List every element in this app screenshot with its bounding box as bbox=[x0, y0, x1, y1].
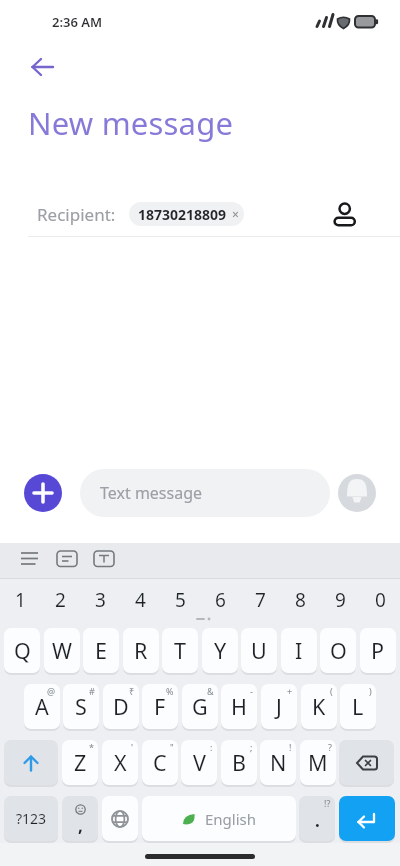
button[interactable]: H bbox=[221, 684, 257, 729]
staticText: M bbox=[308, 748, 328, 777]
staticText: × bbox=[232, 206, 239, 222]
staticText: U bbox=[251, 636, 267, 665]
button[interactable]: B bbox=[221, 740, 257, 785]
button[interactable]: F bbox=[142, 684, 178, 729]
button[interactable]: A bbox=[24, 684, 60, 729]
staticText: F bbox=[154, 692, 166, 721]
staticText: 3 bbox=[95, 587, 106, 613]
button[interactable]: 1 bbox=[0, 580, 40, 620]
button[interactable] bbox=[338, 474, 376, 512]
staticText: H bbox=[231, 692, 247, 721]
button[interactable]: 6 bbox=[200, 580, 240, 620]
staticText: 8 bbox=[295, 587, 306, 613]
button[interactable] bbox=[51, 546, 83, 572]
button[interactable]: V bbox=[181, 740, 217, 785]
button[interactable]: 0 bbox=[360, 580, 400, 620]
staticText: B bbox=[232, 748, 246, 777]
staticText: " bbox=[170, 741, 174, 753]
button[interactable]: Q bbox=[4, 628, 40, 673]
staticText: New message bbox=[28, 102, 234, 144]
staticText: C bbox=[153, 748, 167, 777]
staticText: J bbox=[276, 692, 282, 721]
button[interactable]: 9 bbox=[320, 580, 360, 620]
button[interactable]: 8 bbox=[280, 580, 320, 620]
button[interactable]: English bbox=[142, 796, 296, 841]
button[interactable]: P bbox=[360, 628, 396, 673]
staticText: L bbox=[352, 692, 364, 721]
staticText: Y bbox=[214, 636, 227, 665]
button[interactable]: Y bbox=[202, 628, 238, 673]
button[interactable]: M bbox=[300, 740, 336, 785]
button[interactable] bbox=[102, 796, 138, 841]
staticText: @ bbox=[47, 685, 56, 697]
button[interactable]: Z bbox=[62, 740, 98, 785]
button[interactable]: J bbox=[261, 684, 297, 729]
staticText: W bbox=[52, 636, 72, 665]
staticText: ( bbox=[330, 685, 333, 697]
button[interactable]: 18730218809 bbox=[129, 202, 244, 226]
staticText: K bbox=[312, 692, 326, 721]
staticText: !? bbox=[324, 797, 331, 809]
staticText: English bbox=[205, 809, 257, 829]
button[interactable]: N bbox=[260, 740, 296, 785]
staticText: Q bbox=[14, 636, 31, 665]
button[interactable]: G bbox=[182, 684, 218, 729]
button[interactable]: I bbox=[281, 628, 317, 673]
button[interactable] bbox=[24, 474, 62, 512]
button[interactable] bbox=[23, 49, 63, 85]
staticText: A bbox=[35, 692, 49, 721]
staticText: ; bbox=[250, 741, 253, 753]
button[interactable]: 2 bbox=[40, 580, 80, 620]
button[interactable]: E bbox=[83, 628, 119, 673]
button[interactable]: C bbox=[142, 740, 178, 785]
button[interactable] bbox=[14, 546, 46, 572]
staticText: T bbox=[174, 636, 186, 665]
button[interactable]: T bbox=[162, 628, 198, 673]
staticText: I bbox=[295, 636, 303, 665]
button[interactable]: Text message bbox=[80, 469, 330, 517]
button[interactable]: 7 bbox=[240, 580, 280, 620]
staticText: 1 bbox=[15, 587, 26, 613]
button[interactable]: X bbox=[102, 740, 138, 785]
staticText: : bbox=[210, 741, 213, 753]
staticText: Z bbox=[74, 748, 87, 777]
button[interactable] bbox=[339, 796, 395, 841]
button[interactable]: K bbox=[301, 684, 337, 729]
staticText: . bbox=[315, 809, 320, 832]
button[interactable]: 4 bbox=[120, 580, 160, 620]
staticText: Recipient: bbox=[37, 203, 116, 226]
button[interactable] bbox=[328, 192, 362, 232]
staticText: 6 bbox=[215, 587, 226, 613]
staticText: ) bbox=[369, 685, 372, 697]
button[interactable] bbox=[88, 546, 120, 572]
staticText: 5 bbox=[175, 587, 186, 613]
staticText: - bbox=[250, 685, 253, 697]
staticText: 9 bbox=[335, 587, 346, 613]
staticText: ? bbox=[328, 741, 332, 753]
staticText: 4 bbox=[135, 587, 146, 613]
button[interactable]: !? bbox=[299, 796, 335, 841]
button[interactable]: D bbox=[103, 684, 139, 729]
staticText: 2 bbox=[55, 587, 66, 613]
staticText: G bbox=[192, 692, 208, 721]
button[interactable] bbox=[4, 740, 58, 785]
staticText: Text message bbox=[100, 482, 203, 504]
staticText: 2:36 AM bbox=[52, 13, 103, 31]
button[interactable]: R bbox=[123, 628, 159, 673]
button[interactable]: ?123 bbox=[4, 796, 58, 841]
button[interactable]: , bbox=[62, 796, 98, 841]
button[interactable]: S bbox=[63, 684, 99, 729]
button[interactable]: O bbox=[320, 628, 356, 673]
button[interactable]: W bbox=[44, 628, 80, 673]
button[interactable]: 5 bbox=[160, 580, 200, 620]
staticText: P bbox=[371, 636, 385, 665]
staticText: 7 bbox=[255, 587, 266, 613]
button[interactable]: 3 bbox=[80, 580, 120, 620]
button[interactable]: U bbox=[241, 628, 277, 673]
staticText: X bbox=[114, 748, 127, 777]
button[interactable]: L bbox=[340, 684, 376, 729]
staticText: # bbox=[89, 685, 95, 697]
staticText: ! bbox=[289, 741, 292, 753]
button[interactable] bbox=[339, 740, 394, 785]
staticText: D bbox=[113, 692, 129, 721]
